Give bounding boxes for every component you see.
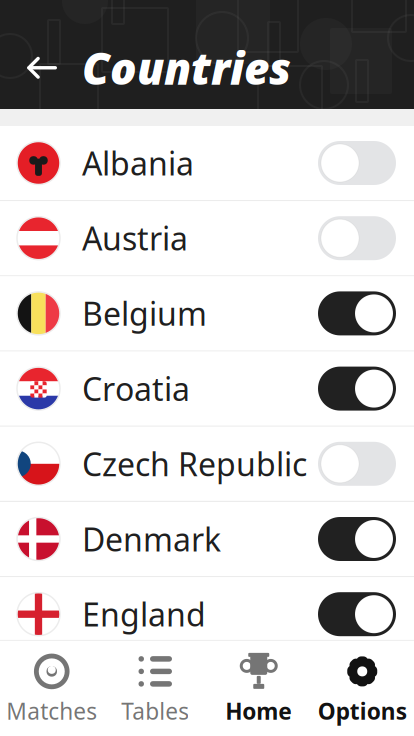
staticText: Czech Republic bbox=[82, 443, 307, 485]
staticText: Home bbox=[225, 696, 292, 726]
button[interactable]: Croatia bbox=[0, 352, 414, 427]
staticText: Options bbox=[318, 696, 407, 726]
staticText: Tables bbox=[121, 696, 189, 726]
button[interactable]: Options bbox=[310, 641, 414, 736]
button[interactable]: Matches bbox=[0, 641, 103, 736]
staticText: Belgium bbox=[82, 292, 207, 335]
button[interactable]: Denmark bbox=[0, 502, 414, 577]
staticText: Croatia bbox=[82, 367, 190, 410]
button[interactable]: Tables bbox=[103, 641, 207, 736]
staticText: England bbox=[82, 593, 206, 635]
staticText: Albania bbox=[82, 142, 194, 184]
button[interactable]: Austria bbox=[0, 201, 414, 276]
button[interactable]: England bbox=[0, 577, 414, 652]
button[interactable]: Home bbox=[207, 641, 310, 736]
staticText: Matches bbox=[6, 696, 97, 726]
staticText: Countries bbox=[82, 39, 291, 97]
staticText: Austria bbox=[82, 217, 188, 259]
button[interactable]: Belgium bbox=[0, 276, 414, 352]
button[interactable]: Back bbox=[12, 44, 72, 92]
staticText: Denmark bbox=[82, 518, 221, 560]
button[interactable]: Czech Republic bbox=[0, 427, 414, 502]
button[interactable]: Albania bbox=[0, 126, 414, 201]
